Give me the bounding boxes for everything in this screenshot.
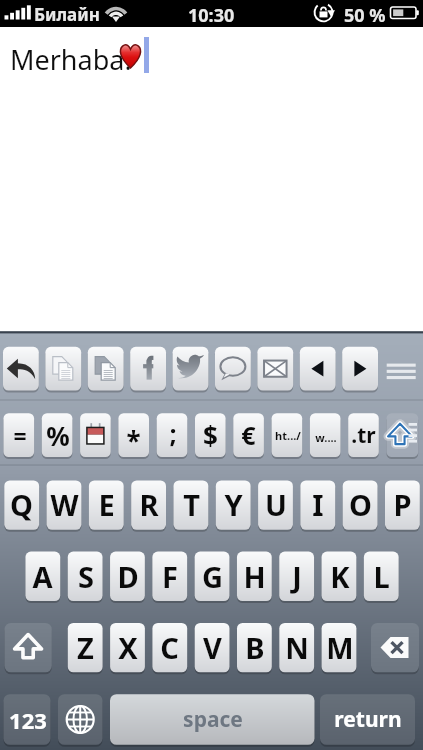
button[interactable]: dot tr <box>348 413 379 457</box>
button[interactable]: equals <box>4 413 35 457</box>
button[interactable]: K <box>322 552 357 601</box>
button[interactable]: R <box>131 480 166 529</box>
button[interactable]: W <box>47 480 82 529</box>
staticText: .tr <box>351 421 376 450</box>
staticText: U <box>265 485 287 524</box>
staticText: D <box>117 557 139 596</box>
button[interactable]: X <box>110 623 145 672</box>
button[interactable]: euro <box>233 413 264 457</box>
button[interactable]: calendar <box>80 413 111 457</box>
staticText: V <box>203 628 222 667</box>
staticText: S <box>78 557 94 596</box>
button[interactable]: G <box>195 552 230 601</box>
staticText: F <box>162 557 178 596</box>
button[interactable]: Copy <box>45 347 81 391</box>
staticText: X <box>118 628 138 667</box>
button[interactable]: P <box>385 480 420 529</box>
button[interactable]: Shift <box>5 623 52 672</box>
staticText: H <box>243 557 266 596</box>
staticText: N <box>285 628 309 667</box>
staticText: P <box>393 485 412 524</box>
staticText: return <box>334 705 402 734</box>
button[interactable]: Menu <box>387 347 416 391</box>
staticText: ; <box>169 416 177 450</box>
staticText: W <box>50 485 79 524</box>
staticText: = <box>13 420 27 451</box>
button[interactable]: Message <box>215 347 251 391</box>
button[interactable]: V <box>195 623 230 672</box>
button[interactable]: Change language <box>58 694 103 745</box>
button[interactable]: semicolon <box>157 413 188 457</box>
button[interactable]: Previous <box>300 347 336 391</box>
staticText: space <box>183 705 243 734</box>
staticText: ht.../ <box>275 428 301 443</box>
staticText: L <box>373 557 390 596</box>
staticText: M <box>326 628 354 667</box>
button[interactable]: M <box>322 623 357 672</box>
button[interactable]: D <box>110 552 145 601</box>
button[interactable]: I <box>300 480 335 529</box>
button[interactable]: dollar <box>195 413 226 457</box>
button[interactable]: Q <box>4 480 39 529</box>
button[interactable]: B <box>237 623 272 672</box>
button[interactable]: Y <box>216 480 251 529</box>
button[interactable]: percent <box>42 413 73 457</box>
button[interactable]: Facebook <box>130 347 166 391</box>
button[interactable]: L <box>364 552 399 601</box>
button[interactable]: E <box>89 480 124 529</box>
staticText: $ <box>203 418 218 453</box>
staticText: € <box>241 418 256 452</box>
button[interactable]: Email <box>257 347 293 391</box>
button[interactable]: Backspace <box>371 623 419 672</box>
staticText: K <box>330 557 350 596</box>
staticText: G <box>202 557 223 596</box>
staticText: 123 <box>9 705 47 735</box>
staticText: Merhaba! <box>10 41 132 78</box>
staticText: Q <box>10 485 33 524</box>
staticText: R <box>139 485 159 524</box>
staticText: B <box>245 628 265 667</box>
button[interactable]: H <box>237 552 272 601</box>
button[interactable]: A <box>25 552 60 601</box>
staticText: I <box>312 485 324 524</box>
staticText: w.... <box>315 430 337 445</box>
staticText: T <box>183 485 200 524</box>
button[interactable]: Twitter <box>173 347 209 391</box>
staticText: Билайн <box>34 3 100 26</box>
staticText: * <box>126 423 141 458</box>
button[interactable]: http <box>272 413 303 457</box>
button[interactable]: C <box>152 623 187 672</box>
staticText: J <box>292 557 302 596</box>
button[interactable]: O <box>343 480 378 529</box>
button[interactable]: F <box>152 552 187 601</box>
button[interactable]: asterisk <box>118 413 149 457</box>
button[interactable]: N <box>279 623 314 672</box>
button[interactable]: S <box>68 552 103 601</box>
staticText: % <box>46 418 70 453</box>
button[interactable]: Numbers <box>4 694 51 745</box>
button[interactable]: Return <box>320 694 415 745</box>
button[interactable]: J <box>279 552 314 601</box>
button[interactable]: Undo <box>3 347 39 391</box>
button[interactable]: Next <box>342 347 378 391</box>
staticText: Y <box>224 485 243 524</box>
button[interactable]: Paste <box>88 347 124 391</box>
button[interactable]: T <box>174 480 209 529</box>
staticText: C <box>160 628 179 667</box>
button[interactable]: Z <box>68 623 103 672</box>
staticText: 50 % <box>344 3 386 28</box>
button[interactable]: U <box>258 480 293 529</box>
staticText: O <box>349 485 372 524</box>
staticText: Z <box>77 628 94 667</box>
staticText: A <box>32 557 53 596</box>
button[interactable]: www <box>310 413 341 457</box>
staticText: 10:30 <box>188 3 235 28</box>
button[interactable]: More symbols <box>387 413 419 457</box>
staticText: E <box>98 485 115 524</box>
button[interactable]: Space <box>110 694 315 745</box>
